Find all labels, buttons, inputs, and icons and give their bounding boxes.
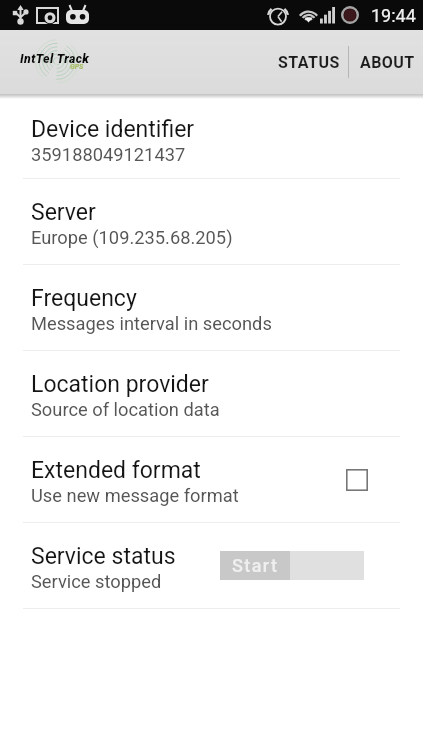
- staticText: STATUS: [278, 53, 340, 72]
- staticText: Source of location data: [31, 399, 220, 420]
- staticText: Location provider: [31, 371, 209, 398]
- staticText: Europe (109.235.68.205): [31, 227, 233, 248]
- button[interactable]: STATUS: [264, 30, 348, 94]
- staticText: Messages interval in seconds: [31, 313, 272, 334]
- staticText: Extended format: [31, 457, 201, 484]
- staticText: Start: [232, 555, 279, 576]
- button[interactable]: Extended format: [0, 437, 423, 522]
- button[interactable]: Location provider: [0, 351, 423, 436]
- staticText: IntTel Track: [20, 52, 90, 66]
- staticText: Device identifier: [31, 116, 195, 143]
- staticText: Service status: [31, 543, 176, 570]
- button[interactable]: Device identifier: [0, 99, 423, 178]
- button[interactable]: ABOUT: [349, 30, 423, 94]
- staticText: Use new message format: [31, 485, 239, 506]
- button[interactable]: Extended format checkbox: [290, 437, 423, 522]
- staticText: Service stopped: [31, 571, 162, 592]
- staticText: Server: [31, 199, 96, 226]
- button[interactable]: Frequency: [0, 265, 423, 350]
- button[interactable]: Start: [220, 551, 290, 580]
- staticText: 19:44: [371, 5, 416, 26]
- staticText: Frequency: [31, 285, 137, 312]
- staticText: ABOUT: [360, 53, 415, 72]
- button[interactable]: Service status: [0, 523, 423, 608]
- staticText: GPS: [70, 63, 84, 71]
- staticText: 359188049121437: [31, 144, 186, 165]
- button[interactable]: Server: [0, 179, 423, 264]
